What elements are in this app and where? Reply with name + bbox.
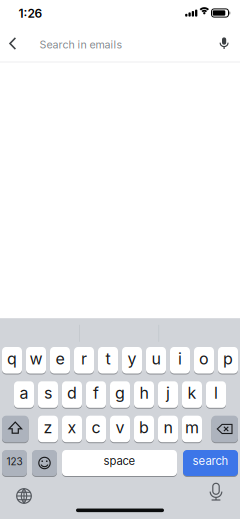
staticText: h xyxy=(139,383,148,403)
button[interactable]: f xyxy=(86,381,106,408)
button[interactable]: o xyxy=(194,347,214,373)
button[interactable]: l xyxy=(206,381,226,408)
button[interactable]: q xyxy=(2,347,22,373)
staticText: 123 xyxy=(6,455,22,468)
staticText: c xyxy=(91,418,100,437)
staticText: p xyxy=(223,349,233,368)
button[interactable]: Next keyboard xyxy=(12,484,36,508)
button[interactable]: search xyxy=(183,450,238,476)
staticText: Search in emails xyxy=(39,38,122,51)
staticText: 1:26 xyxy=(18,6,42,20)
button[interactable]: b xyxy=(134,416,154,442)
staticText: o xyxy=(199,349,209,368)
staticText: s xyxy=(44,383,52,403)
button[interactable]: c xyxy=(86,416,106,442)
button[interactable]: i xyxy=(170,347,190,373)
button[interactable]: h xyxy=(134,381,154,408)
staticText: a xyxy=(19,383,28,403)
button[interactable]: g xyxy=(110,381,130,408)
staticText: n xyxy=(163,418,172,437)
staticText: r xyxy=(81,349,87,368)
button[interactable]: y xyxy=(122,347,142,373)
staticText: f xyxy=(93,383,99,403)
button[interactable]: d xyxy=(62,381,82,408)
staticText: j xyxy=(166,383,170,403)
button[interactable]: Numbers xyxy=(2,450,27,476)
staticText: z xyxy=(43,418,52,437)
button[interactable]: u xyxy=(146,347,166,373)
staticText: t xyxy=(105,349,110,368)
button[interactable]: n xyxy=(158,416,178,442)
staticText: e xyxy=(55,349,64,368)
button[interactable]: x xyxy=(62,416,82,442)
staticText: search xyxy=(192,454,228,468)
staticText: l xyxy=(214,383,218,403)
staticText: x xyxy=(67,418,76,437)
button[interactable]: e xyxy=(50,347,70,373)
staticText: w xyxy=(29,349,42,368)
button[interactable]: Voice search xyxy=(212,31,236,55)
staticText: d xyxy=(67,383,77,403)
staticText: space xyxy=(103,454,135,468)
button[interactable]: z xyxy=(38,416,58,442)
staticText: b xyxy=(139,418,149,437)
button[interactable]: s xyxy=(38,381,58,408)
button[interactable]: Shift xyxy=(2,416,28,442)
button[interactable]: Emoji xyxy=(32,450,57,476)
staticText: m xyxy=(185,418,199,437)
button[interactable]: v xyxy=(110,416,130,442)
button[interactable]: k xyxy=(182,381,202,408)
button[interactable]: Back xyxy=(3,33,23,53)
button[interactable]: t xyxy=(98,347,118,373)
staticText: q xyxy=(7,349,17,368)
button[interactable]: w xyxy=(26,347,46,373)
staticText: g xyxy=(115,383,125,403)
button[interactable]: p xyxy=(218,347,238,373)
staticText: v xyxy=(115,418,124,437)
button[interactable]: j xyxy=(158,381,178,408)
staticText: k xyxy=(187,383,196,403)
button[interactable]: Dictation xyxy=(204,481,228,505)
staticText: u xyxy=(151,349,160,368)
button[interactable]: r xyxy=(74,347,94,373)
button[interactable]: space xyxy=(62,450,177,476)
staticText: i xyxy=(178,349,182,368)
button[interactable]: a xyxy=(14,381,34,408)
button[interactable]: m xyxy=(182,416,202,442)
staticText: y xyxy=(127,349,136,368)
button[interactable]: Delete xyxy=(211,416,238,442)
